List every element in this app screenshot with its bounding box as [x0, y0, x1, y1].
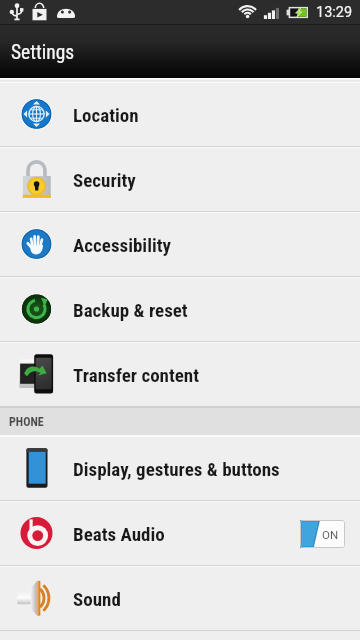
staticText: Security — [73, 169, 136, 191]
staticText: Settings — [11, 41, 75, 64]
staticText: PHONE — [9, 415, 44, 429]
button[interactable]: Beats Audio — [0, 501, 360, 566]
staticText: Backup & reset — [73, 299, 188, 321]
button[interactable]: Accessibility — [0, 212, 360, 277]
button[interactable]: Display, gestures & buttons — [0, 436, 360, 501]
staticText: Display, gestures & buttons — [73, 458, 280, 480]
button[interactable]: Security — [0, 147, 360, 212]
button[interactable]: Transfer content — [0, 342, 360, 407]
staticText: 13:29 — [316, 4, 353, 21]
button[interactable]: Sound — [0, 566, 360, 631]
button[interactable]: Location — [0, 82, 360, 147]
staticText: Transfer content — [73, 364, 200, 386]
button[interactable]: Backup & reset — [0, 277, 360, 342]
staticText: Accessibility — [73, 234, 172, 256]
staticText: Sound — [73, 588, 121, 610]
staticText: Beats Audio — [73, 523, 165, 545]
staticText: Location — [73, 104, 139, 126]
staticText: ON — [322, 528, 339, 541]
